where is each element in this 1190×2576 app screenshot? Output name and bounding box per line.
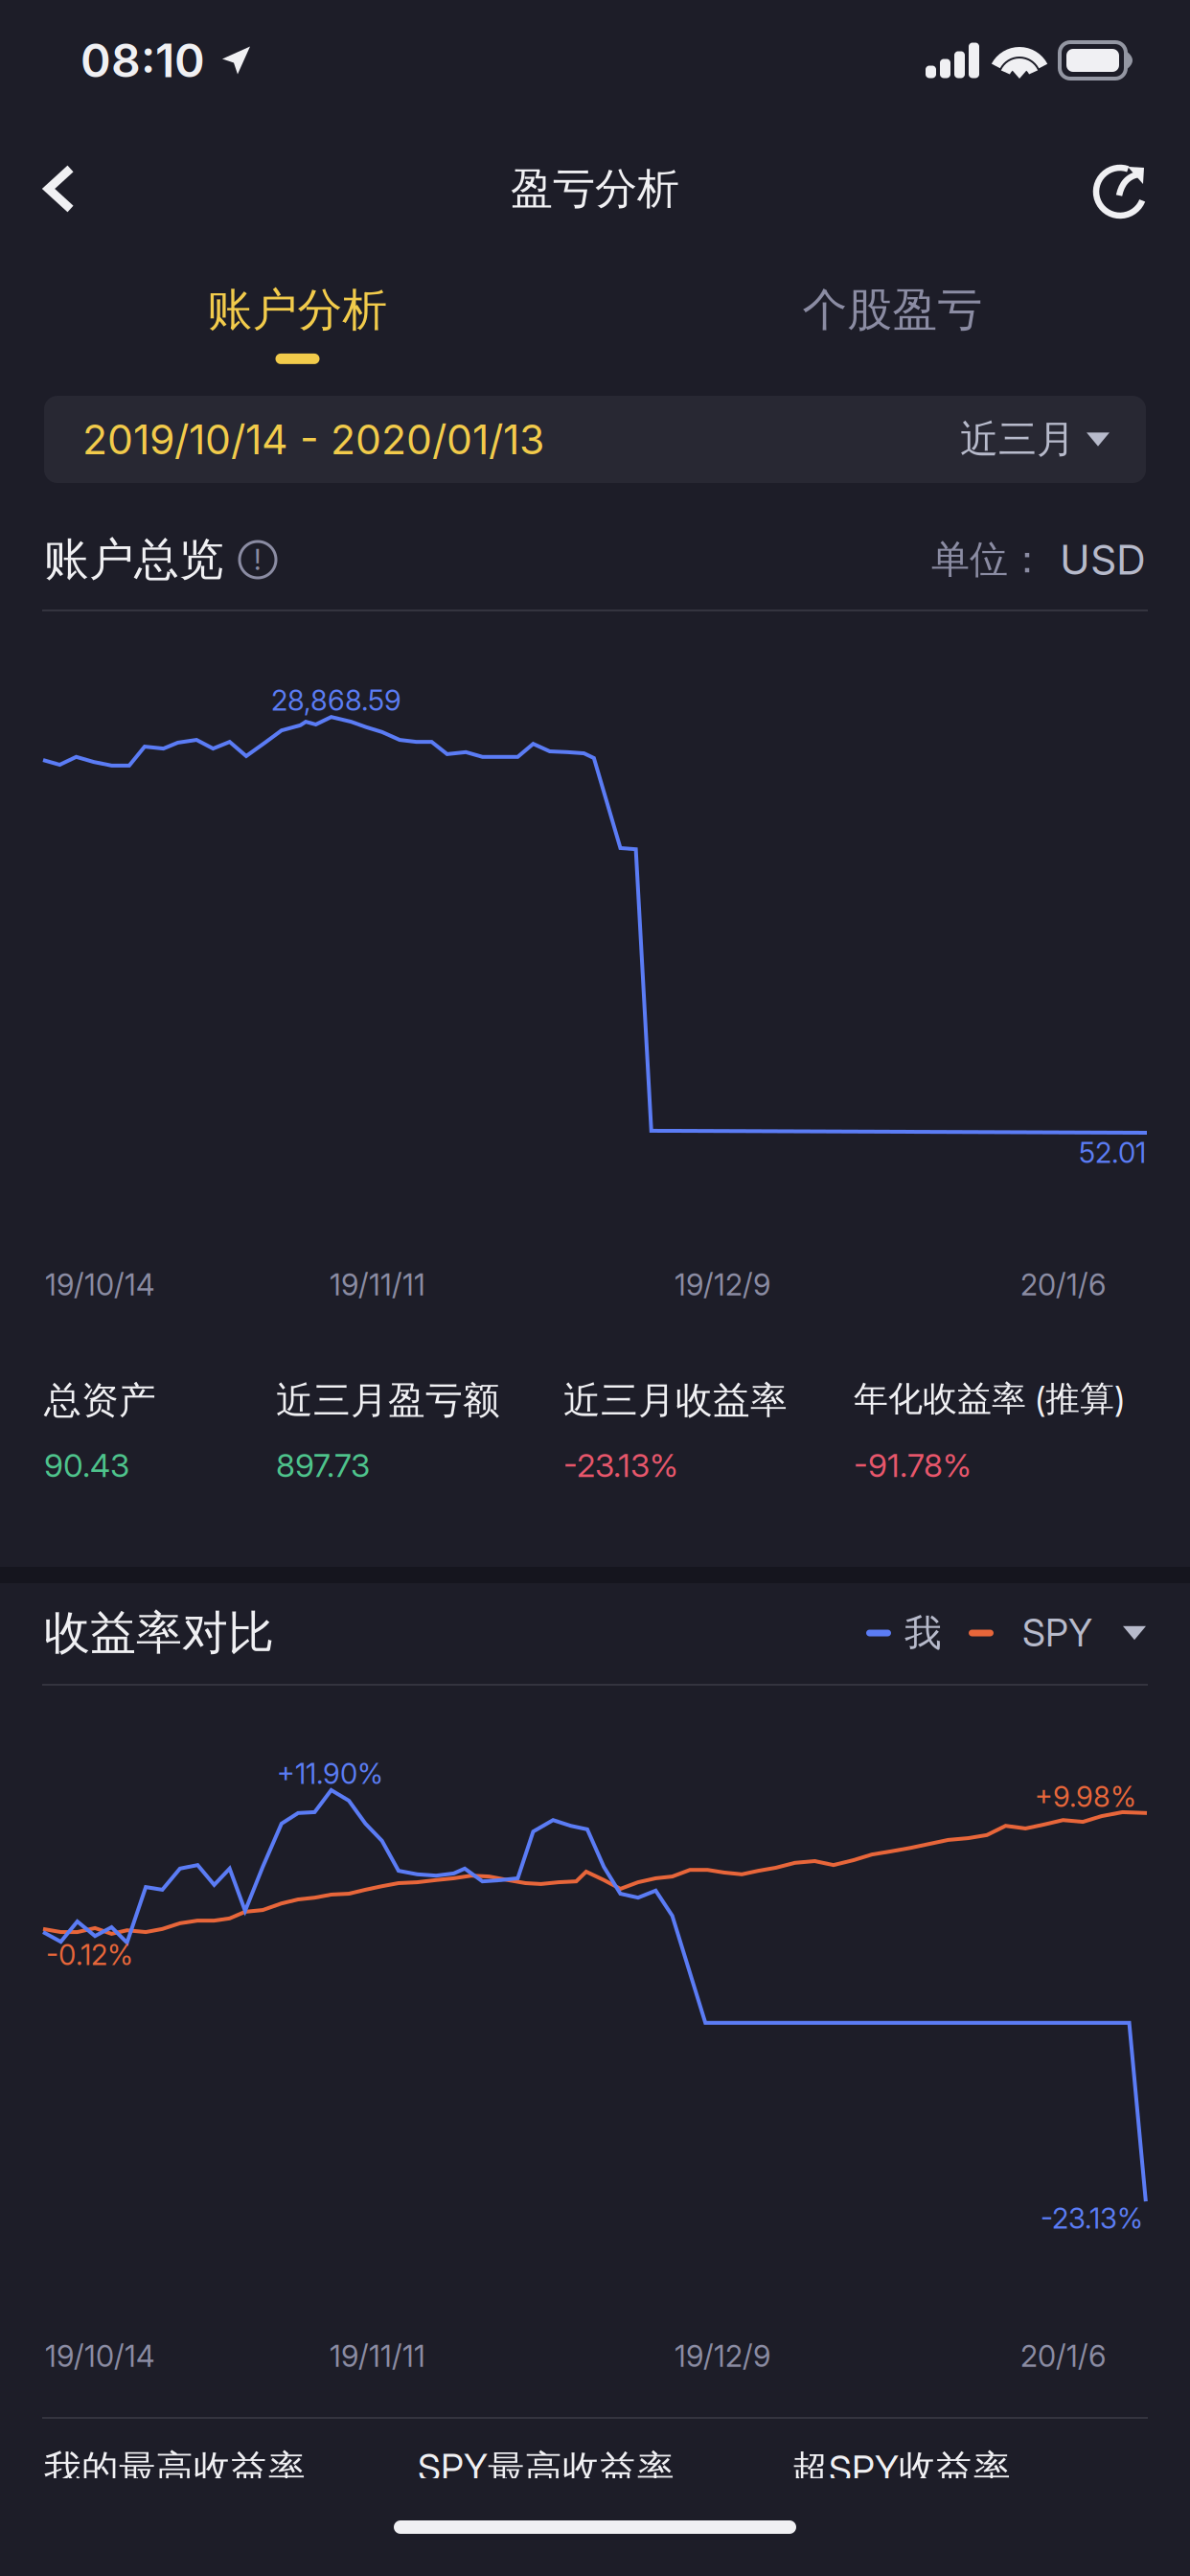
staticText: -23.13% — [563, 1446, 678, 1485]
staticText: USD — [1060, 535, 1146, 584]
staticText: 近三月盈亏额 — [276, 1377, 500, 1424]
staticText: 19/10/14 — [45, 1267, 154, 1302]
staticText: 52.01 — [1079, 1136, 1146, 1170]
staticText: 年化收益率 (推算) — [854, 1377, 1125, 1421]
staticText: 08:10 — [80, 33, 205, 88]
staticText: 19/12/9 — [675, 2338, 770, 2374]
staticText: 19/11/11 — [330, 1267, 425, 1302]
staticText: -0.12% — [46, 1938, 133, 1972]
staticText: 20/1/6 — [1020, 1267, 1106, 1302]
staticText: SPY — [1022, 1611, 1092, 1655]
button[interactable]: Back — [11, 136, 107, 241]
staticText: 2019/10/14 - 2020/01/13 — [82, 415, 544, 464]
staticText: 盈亏分析 — [511, 162, 679, 215]
staticText: 我 — [904, 1610, 942, 1656]
staticText: 近三月 — [960, 415, 1075, 464]
staticText: 19/10/14 — [45, 2338, 154, 2374]
staticText: 20/1/6 — [1020, 2338, 1106, 2374]
button[interactable]: 账户分析 — [0, 270, 595, 376]
staticText: 我的最高收益率 — [44, 2446, 306, 2492]
staticText: 账户分析 — [207, 282, 388, 338]
staticText: +11.90% — [277, 1757, 383, 1791]
staticText: ! — [254, 543, 262, 577]
staticText: -23.13% — [1041, 2201, 1143, 2235]
staticText: SPY最高收益率 — [418, 2446, 675, 2493]
staticText: 90.43 — [44, 1446, 129, 1485]
button[interactable]: 个股盈亏 — [595, 270, 1190, 376]
button[interactable]: Refresh — [1073, 136, 1169, 241]
staticText: 近三月收益率 — [563, 1377, 788, 1424]
staticText: 账户总览 — [44, 531, 224, 588]
staticText: 超SPY收益率 — [791, 2446, 1011, 2492]
button[interactable]: 2019/10/14 - 2020/01/13 — [44, 396, 1146, 483]
staticText: 个股盈亏 — [802, 282, 983, 338]
staticText: 19/12/9 — [675, 1267, 770, 1302]
staticText: -91.78% — [854, 1446, 972, 1485]
staticText: 总资产 — [44, 1377, 156, 1424]
staticText: 收益率对比 — [44, 1604, 274, 1662]
staticText: 28,868.59 — [271, 683, 401, 717]
staticText: 19/11/11 — [330, 2338, 425, 2374]
staticText: 单位： — [931, 536, 1046, 584]
staticText: 897.73 — [276, 1446, 370, 1485]
staticText: +9.98% — [1035, 1780, 1136, 1814]
